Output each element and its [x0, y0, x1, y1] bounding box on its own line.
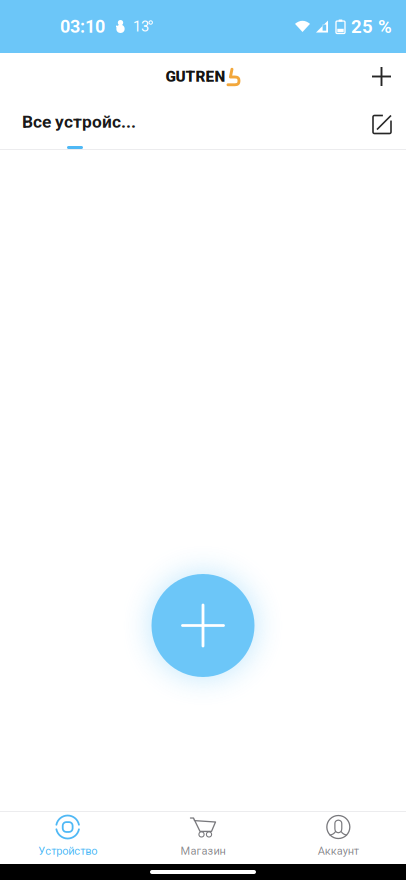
staticText: Аккаунт — [318, 844, 359, 857]
button[interactable]: Add — [357, 55, 406, 98]
button[interactable]: Аккаунт — [271, 812, 406, 864]
staticText: 25 % — [351, 16, 392, 37]
button[interactable]: Устройство — [0, 812, 135, 864]
button[interactable]: Add device — [151, 574, 254, 677]
staticText: 03:10 — [60, 16, 105, 37]
staticText: 13 — [133, 18, 149, 35]
staticText: GUTREN — [165, 67, 225, 85]
button[interactable]: Edit — [358, 102, 406, 146]
button[interactable]: Магазин — [135, 812, 271, 864]
staticText: Все устройс... — [22, 112, 136, 132]
button[interactable]: Все устройс... — [0, 100, 146, 149]
staticText: Устройство — [38, 844, 97, 857]
staticText: Магазин — [180, 844, 225, 857]
